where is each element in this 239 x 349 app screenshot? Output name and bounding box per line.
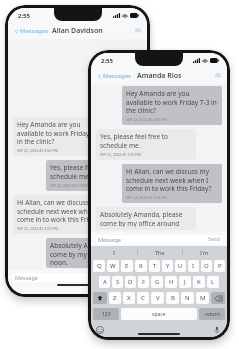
staticText: L [211,278,215,286]
button[interactable]: Hey Amanda are you available to work Fri… [122,86,222,125]
button[interactable]: E [121,260,133,272]
button[interactable]: I [188,260,199,272]
button[interactable]: Messages [95,70,133,82]
staticText: S [116,278,120,286]
button[interactable]: Hi Allan, can we discuss my schedule nex… [122,164,222,203]
staticText: A [103,278,107,286]
staticText: Hey Amanda are you available to work Fri… [126,89,218,115]
button[interactable]: Hi Allan, can we discuss my schedule nex… [13,195,109,234]
button[interactable]: T [149,260,160,272]
staticText: V [156,294,160,302]
staticText: space [152,311,166,318]
staticText: U [178,262,183,270]
button[interactable]: space [121,308,197,320]
staticText: X [127,294,131,302]
button[interactable] [211,292,225,304]
button[interactable]: The [137,246,182,258]
button[interactable]: M [196,292,209,304]
staticText: Yes, please feel free to schedule me. [100,132,192,150]
button[interactable]: F [138,276,149,288]
staticText: I'm [200,249,209,256]
staticText: Y [166,262,170,270]
staticText: Q [97,262,102,270]
button[interactable]: U [175,260,186,272]
button[interactable]: W [107,260,119,272]
staticText: E [125,262,129,270]
button[interactable]: I'm [182,246,227,258]
staticText: Hey Amanda are you available to work Fri… [17,120,105,146]
staticText: F [142,278,146,286]
staticText: Amanda Rios [137,71,182,81]
staticText: W [110,262,116,270]
button[interactable]: 123 [93,308,119,320]
button[interactable]: B [166,292,179,304]
staticText: D [128,278,133,286]
button[interactable]: S [112,276,123,288]
staticText: H [169,278,174,286]
button[interactable]: C [137,292,149,304]
staticText: Absolutely Amanda, please come by my off… [100,210,192,227]
staticText: M [200,294,206,302]
staticText: Hi Allan, can we discuss my schedule nex… [17,198,105,224]
button[interactable]: H [165,276,177,288]
staticText: K [197,278,201,286]
button[interactable]: Absolutely Amanda, please come by my off… [96,207,196,230]
button[interactable]: Message [95,235,223,244]
staticText: SEP 22, 2022 AT 2:50 PM [100,152,141,157]
staticText: The [155,249,165,256]
button[interactable]: Absolutely Amanda, please come by my off… [46,238,142,268]
staticText: Message [15,274,38,281]
staticText: J [184,278,186,286]
staticText: Z [113,294,117,302]
button[interactable]: Emoji [96,326,104,334]
button[interactable]: Q [93,260,105,272]
staticText: Messages [103,72,131,80]
button[interactable]: L [207,276,219,288]
button[interactable]: Z [109,292,121,304]
staticText: SEP 22, 2022 AT 2:50 PM [126,117,167,122]
button[interactable]: Yes, please feel free to schedule me. [46,160,142,191]
button[interactable]: Message [12,273,143,282]
staticText: I [113,249,115,256]
button[interactable]: Y [162,260,173,272]
button[interactable]: Contact info [134,27,142,35]
button[interactable]: K [193,276,205,288]
button[interactable]: R [135,260,147,272]
button[interactable]: D [125,276,136,288]
staticText: return [205,311,220,318]
staticText: SEP 22, 2022 AT 2:50 PM [50,183,91,188]
staticText: Send [208,236,220,243]
staticText: Allan Davidson [52,26,103,36]
button[interactable]: P [214,260,225,272]
staticText: T [153,262,157,270]
staticText: Message [98,236,121,243]
staticText: I [192,262,195,270]
staticText: P [218,262,222,270]
button[interactable]: O [201,260,212,272]
button[interactable]: A [99,276,110,288]
button[interactable]: Yes, please feel free to schedule me. [96,129,196,160]
button[interactable]: V [151,292,164,304]
button[interactable]: X [123,292,135,304]
button[interactable]: I [91,246,137,258]
button[interactable]: return [199,308,225,320]
staticText: C [141,294,145,302]
staticText: G [155,278,160,286]
staticText: SEP 22, 2022 AT 2:53 PM [126,195,167,200]
button[interactable]: Hey Amanda are you available to work Fri… [13,117,109,156]
staticText: B [171,294,175,302]
staticText: O [204,262,209,270]
staticText: 123 [102,311,111,318]
staticText: Absolutely Amanda, please come by my off… [50,241,138,265]
button[interactable]: G [151,276,163,288]
staticText: R [139,262,143,270]
button[interactable]: Dictate [213,326,221,334]
button[interactable]: N [181,292,194,304]
staticText: N [185,294,190,302]
staticText: Yes, please feel free to schedule me. [50,163,138,181]
button[interactable]: Messages [12,25,50,37]
button[interactable]: Contact info [214,72,222,80]
button[interactable]: J [179,276,191,288]
staticText: 2:55 [18,12,30,20]
button[interactable] [93,292,107,304]
